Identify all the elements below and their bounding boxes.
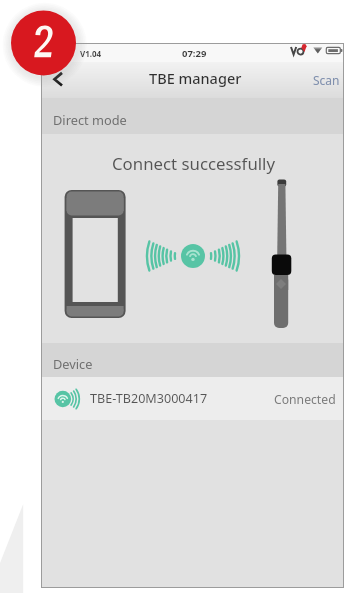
- button[interactable]: TBE-TB20M3000417: [42, 377, 343, 420]
- staticText: Connected: [274, 391, 336, 408]
- staticText: Scan: [313, 72, 340, 88]
- staticText: Connect successfully: [112, 152, 276, 175]
- staticText: 07:29: [182, 47, 207, 60]
- button[interactable]: Scan: [305, 65, 348, 95]
- staticText: TBE manager: [149, 68, 242, 88]
- staticText: Direct mode: [53, 111, 127, 128]
- staticText: V1.04: [80, 48, 102, 59]
- other: Step 2: [0, 0, 349, 593]
- staticText: Device: [53, 355, 93, 372]
- button[interactable]: Back: [44, 64, 76, 96]
- staticText: TBE-TB20M3000417: [90, 390, 208, 407]
